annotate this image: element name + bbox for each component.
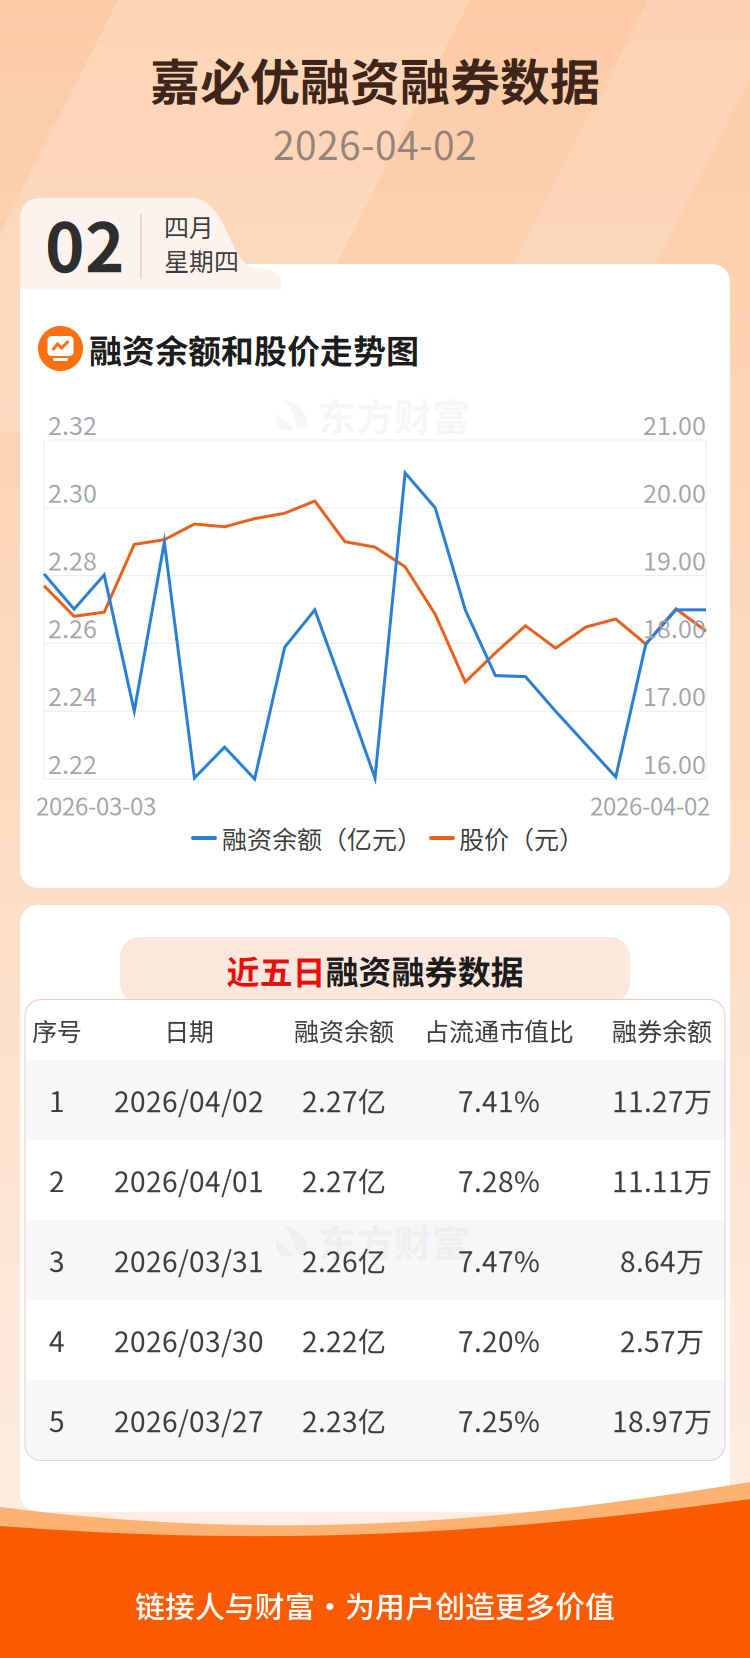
staticText: 2.24 — [48, 677, 97, 713]
staticText: 融资余额 — [294, 1012, 394, 1048]
staticText: 2026-04-02 — [590, 788, 710, 822]
staticText: 7.25% — [458, 1400, 540, 1440]
staticText: 近五日 — [226, 946, 325, 994]
staticText: 2026/04/01 — [114, 1160, 264, 1200]
staticText: 2.27亿 — [302, 1160, 386, 1200]
staticText: 2.30 — [48, 474, 97, 510]
staticText: 2026/04/02 — [114, 1080, 264, 1120]
staticText: 2.27亿 — [302, 1080, 386, 1120]
staticText: 7.20% — [458, 1320, 540, 1360]
staticText: 16.00 — [643, 745, 706, 781]
staticText: 东方财富 — [318, 387, 470, 442]
staticText: 3 — [49, 1240, 65, 1280]
staticText: 7.47% — [458, 1240, 540, 1280]
staticText: 18.00 — [643, 609, 706, 645]
staticText: 2026/03/30 — [114, 1320, 264, 1360]
staticText: 2026/03/27 — [114, 1400, 264, 1440]
staticText: 日期 — [164, 1012, 214, 1048]
staticText: 融资余额和股价走势图 — [89, 325, 419, 373]
staticText: 融资余额（亿元） — [222, 820, 422, 856]
staticText: 8.64万 — [620, 1240, 704, 1280]
staticText: 2026/03/31 — [114, 1240, 264, 1280]
staticText: 02 — [45, 194, 125, 291]
staticText: 2.26亿 — [302, 1240, 386, 1280]
staticText: 链接人与财富·为用户创造更多价值 — [135, 1583, 615, 1627]
staticText: 融券余额 — [612, 1012, 712, 1048]
staticText: 2.26 — [48, 609, 97, 645]
staticText: 2.57万 — [620, 1320, 704, 1360]
staticText: 4 — [49, 1320, 65, 1360]
staticText: 7.41% — [458, 1080, 540, 1120]
staticText: 2026-03-03 — [36, 788, 156, 822]
staticText: 19.00 — [643, 541, 706, 578]
staticText: 嘉必优融资融券数据 — [150, 43, 600, 115]
staticText: 7.28% — [458, 1160, 540, 1200]
staticText: 20.00 — [643, 474, 706, 510]
staticText: 序号 — [32, 1012, 82, 1048]
staticText: 2.28 — [48, 541, 97, 578]
staticText: 17.00 — [643, 677, 706, 713]
staticText: 股价（元） — [459, 820, 584, 856]
staticText: 21.00 — [643, 406, 706, 442]
staticText: 东方财富 — [318, 1213, 470, 1268]
staticText: 2 — [49, 1160, 65, 1200]
staticText: 11.11万 — [612, 1160, 712, 1200]
staticText: 2026-04-02 — [273, 115, 477, 171]
staticText: 2.32 — [48, 406, 97, 442]
staticText: 融资融券数据 — [325, 946, 523, 994]
staticText: 1 — [49, 1080, 65, 1120]
staticText: 2.23亿 — [302, 1400, 386, 1440]
staticText: 星期四 — [164, 242, 239, 278]
staticText: 2.22 — [48, 745, 97, 781]
staticText: 2.22亿 — [302, 1320, 386, 1360]
staticText: 四月 — [164, 208, 214, 244]
staticText: 18.97万 — [612, 1400, 712, 1440]
staticText: 11.27万 — [612, 1080, 712, 1120]
staticText: 5 — [49, 1400, 65, 1440]
staticText: 占流通市值比 — [424, 1012, 574, 1048]
